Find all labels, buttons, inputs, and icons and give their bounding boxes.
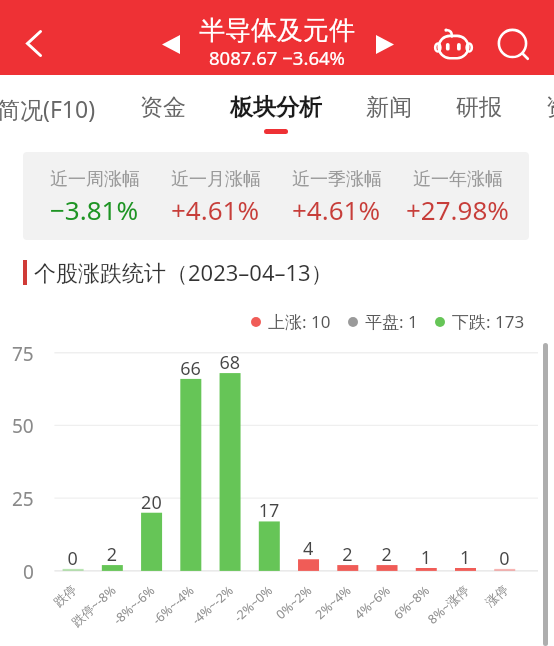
staticText: −3.81% (50, 192, 139, 227)
button[interactable]: Next sector (367, 26, 403, 62)
staticText: 上涨: 10 (268, 310, 331, 333)
staticText: 研报 (456, 93, 502, 122)
staticText: +4.61% (171, 192, 260, 227)
button[interactable]: AI assistant (428, 18, 479, 69)
staticText: 资金 (140, 93, 186, 122)
staticText: 8087.67 −3.64% (209, 45, 345, 70)
button[interactable]: 板块分析 (208, 75, 344, 134)
staticText: 近一周涨幅 (50, 168, 140, 191)
staticText: +27.98% (406, 192, 509, 227)
button[interactable]: Previous sector (153, 26, 189, 62)
button[interactable]: Back (7, 17, 60, 70)
staticText: 个股涨跌统计（2023–04–13） (34, 257, 333, 287)
staticText: 下跌: 173 (452, 310, 525, 333)
button[interactable]: 平盘: 1 (348, 310, 418, 333)
staticText: 新闻 (366, 93, 412, 122)
staticText: 近一季涨幅 (292, 168, 382, 191)
staticText: 板块分析 (230, 93, 322, 122)
staticText: +4.61% (292, 192, 381, 227)
button[interactable]: 研报 (434, 75, 524, 134)
button[interactable]: 下跌: 173 (435, 310, 525, 333)
staticText: 近一年涨幅 (413, 168, 503, 191)
button[interactable]: 简况(F10) (0, 75, 118, 136)
button[interactable]: 个股涨跌统计（2023–04–13） (23, 257, 333, 287)
staticText: 平盘: 1 (365, 310, 418, 333)
button[interactable]: 新闻 (344, 75, 434, 134)
staticText: 近一月涨幅 (171, 168, 261, 191)
staticText: 简况(F10) (0, 93, 96, 124)
staticText: 半导体及元件 (199, 14, 355, 47)
button[interactable]: 资金 (118, 75, 208, 134)
button[interactable]: 上涨: 10 (251, 310, 331, 333)
button[interactable]: Search (489, 20, 539, 70)
button[interactable]: 近一周涨幅 (23, 152, 529, 240)
